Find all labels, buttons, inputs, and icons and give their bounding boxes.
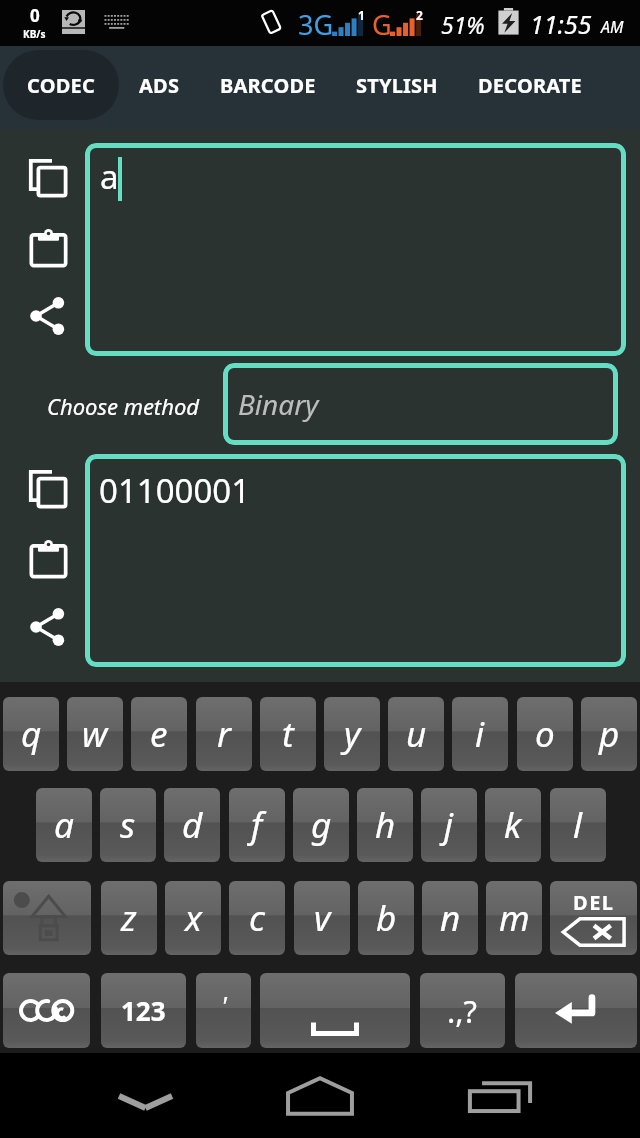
staticText: Choose method [47,391,200,421]
staticText: z [121,894,137,942]
button[interactable]: d [164,788,220,862]
staticText: x [185,894,202,942]
button[interactable]: e [131,697,187,771]
button[interactable]: z [101,881,157,955]
staticText: w [82,710,108,758]
staticText: 51% [441,9,485,40]
button[interactable]: Paste [22,535,74,583]
button[interactable]: h [357,788,413,862]
button[interactable]: m [486,881,542,955]
button[interactable]: Delete [550,881,637,955]
staticText: ADS [139,72,180,99]
staticText: i [475,710,485,758]
button[interactable]: k [485,788,541,862]
button[interactable]: Shift [3,881,91,955]
staticText: 1 [358,7,365,23]
button[interactable]: u [388,697,444,771]
button[interactable]: Paste [22,224,74,272]
staticText: t [282,710,294,758]
button[interactable]: 123 [101,973,186,1048]
staticText: ' [221,987,227,1022]
staticText: l [573,801,583,849]
button[interactable]: Recent apps [444,1053,556,1138]
button[interactable]: Change language [3,973,90,1048]
staticText: q [21,710,42,758]
button[interactable]: Binary [223,363,618,445]
staticText: d [182,801,203,849]
button[interactable]: v [294,881,350,955]
staticText: DEL [573,889,615,916]
staticText: m [499,894,530,942]
button[interactable]: x [165,881,221,955]
button[interactable]: y [324,697,380,771]
button[interactable]: 01100001 [85,454,626,667]
button[interactable]: Copy [22,465,74,513]
button[interactable]: s [100,788,156,862]
button[interactable]: .,? [420,973,505,1048]
button[interactable]: Home [264,1053,376,1138]
button[interactable]: i [452,697,508,771]
staticText: c [249,894,265,942]
staticText: r [217,710,231,758]
staticText: .,? [447,990,478,1032]
staticText: a [54,801,74,849]
button[interactable]: t [260,697,316,771]
staticText: 3G [298,6,334,43]
staticText: 0 [30,4,40,27]
staticText: KB/s [23,27,46,41]
button[interactable]: r [196,697,252,771]
staticText: BARCODE [220,72,316,99]
button[interactable]: p [581,697,637,771]
staticText: CODEC [27,72,95,99]
button[interactable]: g [293,788,349,862]
staticText: p [599,710,620,758]
staticText: s [120,801,136,849]
staticText: DECORATE [478,72,582,99]
button[interactable]: BARCODE [200,49,336,121]
staticText: G [372,6,392,43]
button[interactable]: ADS [119,49,200,121]
button[interactable]: Share [22,292,74,340]
button[interactable]: o [517,697,573,771]
button[interactable]: a [36,788,92,862]
staticText: Binary [238,385,319,423]
staticText: 2 [416,7,423,23]
staticText: y [344,710,361,758]
button[interactable]: c [229,881,285,955]
staticText: n [440,894,461,942]
button[interactable]: Hide keyboard [89,1053,201,1138]
staticText: a [100,154,119,199]
button[interactable]: w [67,697,123,771]
staticText: j [444,801,454,849]
button[interactable]: q [3,697,59,771]
button[interactable]: ' [196,973,251,1048]
staticText: 11:55 [530,7,592,41]
staticText: o [535,710,555,758]
button[interactable]: STYLISH [336,49,458,121]
button[interactable]: CODEC [3,50,119,120]
staticText: e [150,710,168,758]
staticText: k [504,801,522,849]
staticText: STYLISH [356,72,438,99]
staticText: 01100001 [99,468,251,513]
staticText: AM [601,16,624,38]
button[interactable]: a [85,143,626,356]
staticText: b [376,894,397,942]
button[interactable]: f [229,788,285,862]
button[interactable]: Enter [515,973,637,1048]
button[interactable]: Copy [22,154,74,202]
staticText: 123 [121,993,166,1028]
staticText: v [314,894,331,942]
staticText: h [375,801,396,849]
button[interactable]: Share [22,603,74,651]
staticText: g [311,801,332,849]
button[interactable]: DECORATE [458,49,602,121]
button[interactable]: Space [260,973,410,1048]
staticText: f [251,801,263,849]
button[interactable]: j [421,788,477,862]
staticText: u [406,710,427,758]
button[interactable]: b [358,881,414,955]
button[interactable]: n [422,881,478,955]
button[interactable]: l [550,788,606,862]
